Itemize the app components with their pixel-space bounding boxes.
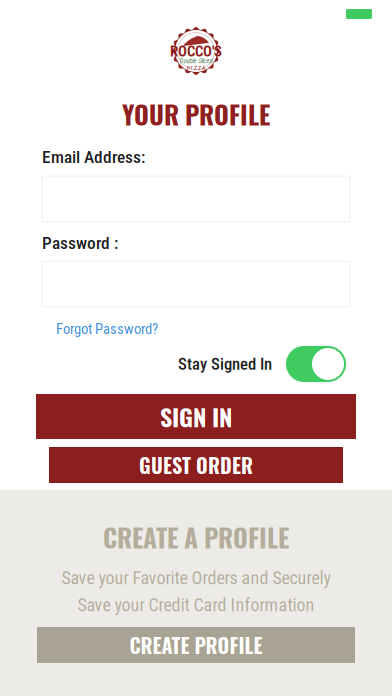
staticText: CREATE PROFILE [129, 630, 262, 660]
staticText: Save your Credit Card Information [77, 594, 314, 616]
staticText: Password : [42, 233, 118, 253]
button[interactable]: SIGN IN [36, 394, 356, 439]
staticText: Email Address: [42, 147, 145, 167]
button[interactable]: Stay Signed In [286, 346, 346, 382]
staticText: Double Sliced [179, 57, 212, 65]
button[interactable]: Forgot Password? [42, 319, 158, 339]
staticText: Save your Favorite Orders and Securely [61, 567, 330, 589]
staticText: Forgot Password? [56, 320, 158, 338]
staticText: ROCCO'S [170, 43, 222, 60]
staticText: GUEST ORDER [139, 450, 253, 480]
staticText: CREATE A PROFILE [103, 518, 289, 556]
button[interactable]: GUEST ORDER [49, 447, 343, 483]
staticText: SIGN IN [160, 399, 232, 434]
staticText: Stay Signed In [178, 354, 272, 374]
staticText: YOUR PROFILE [122, 95, 270, 133]
staticText: P I Z Z A [187, 64, 205, 71]
button[interactable]: CREATE PROFILE [37, 627, 355, 663]
